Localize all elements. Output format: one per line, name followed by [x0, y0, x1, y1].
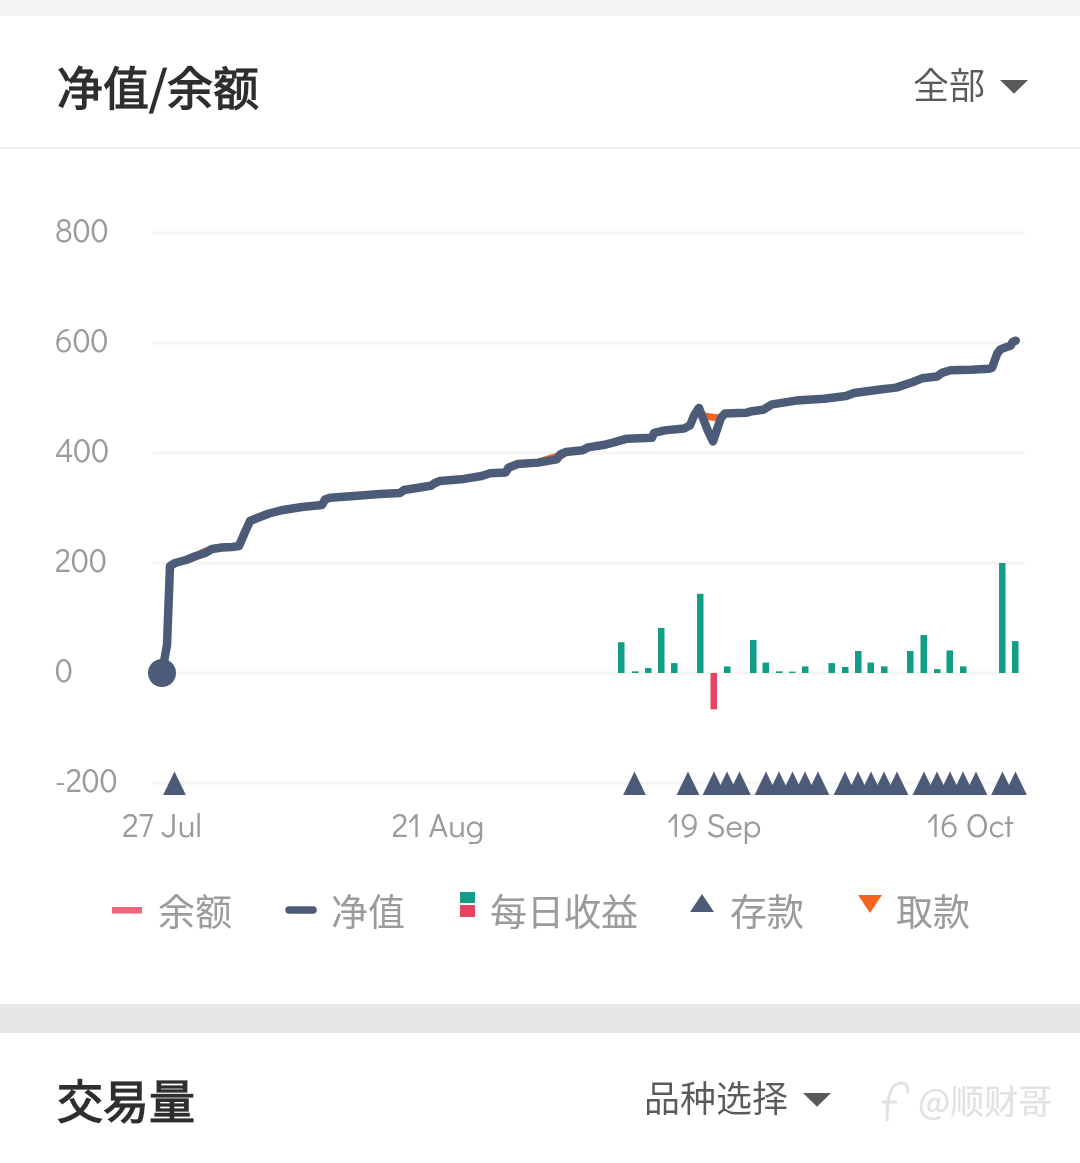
staticText: 品种选择 [644, 1070, 789, 1122]
staticText: 0 [55, 649, 73, 691]
staticText: 余额 [158, 883, 232, 937]
staticText: 取款 [896, 883, 970, 937]
staticText: 27 Jul [62, 802, 262, 845]
staticText: -200 [55, 759, 118, 801]
staticText: 净值 [331, 883, 405, 937]
staticText: 每日收益 [490, 883, 638, 937]
staticText: @顺财哥 [918, 1075, 1053, 1124]
staticText: 16 Oct [870, 802, 1070, 845]
button[interactable]: 全部 range filter [913, 57, 1028, 109]
staticText: 600 [55, 319, 109, 361]
button[interactable]: 取款 [850, 880, 978, 940]
staticText: 交易量 [57, 1065, 195, 1132]
staticText: 21 Aug [338, 802, 538, 845]
staticText: 800 [55, 209, 109, 251]
staticText: 存款 [730, 883, 804, 937]
button[interactable]: 每日收益 [452, 880, 642, 940]
staticText: 19 Sep [614, 802, 814, 845]
button[interactable]: 净值 [278, 880, 410, 940]
button[interactable]: 余额 [104, 880, 236, 940]
staticText: 200 [55, 539, 107, 581]
staticText: 全部 [913, 57, 986, 109]
button[interactable]: 品种选择 instrument filter [644, 1070, 831, 1122]
staticText: 净值/余额 [57, 52, 260, 119]
staticText: 400 [55, 429, 110, 471]
button[interactable]: 存款 [682, 880, 810, 940]
